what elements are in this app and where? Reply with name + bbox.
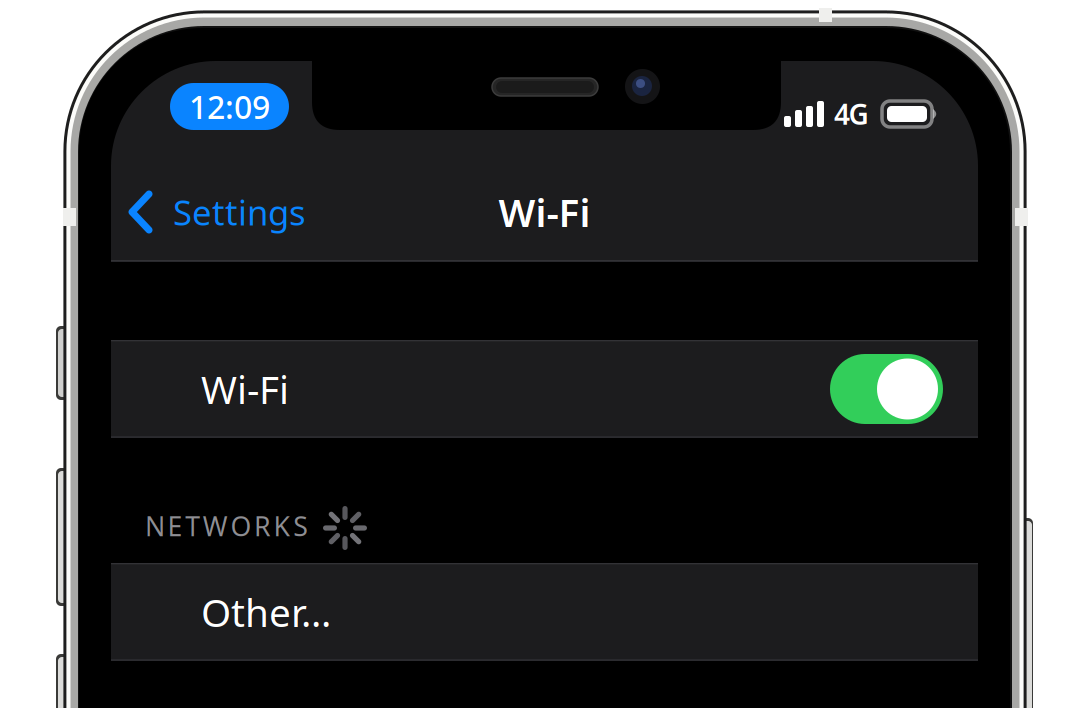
button[interactable]: Other... xyxy=(111,563,978,661)
staticText: Wi-Fi xyxy=(498,186,590,238)
staticText: Wi-Fi xyxy=(201,363,289,415)
staticText: 12:09 xyxy=(189,85,270,128)
staticText: 4G xyxy=(834,95,868,133)
staticText: Settings xyxy=(173,189,306,235)
staticText: Other... xyxy=(201,586,331,638)
button[interactable]: Settings xyxy=(128,176,408,248)
staticText: NETWORKS xyxy=(145,508,308,544)
button[interactable]: Wi-Fi xyxy=(111,340,978,438)
